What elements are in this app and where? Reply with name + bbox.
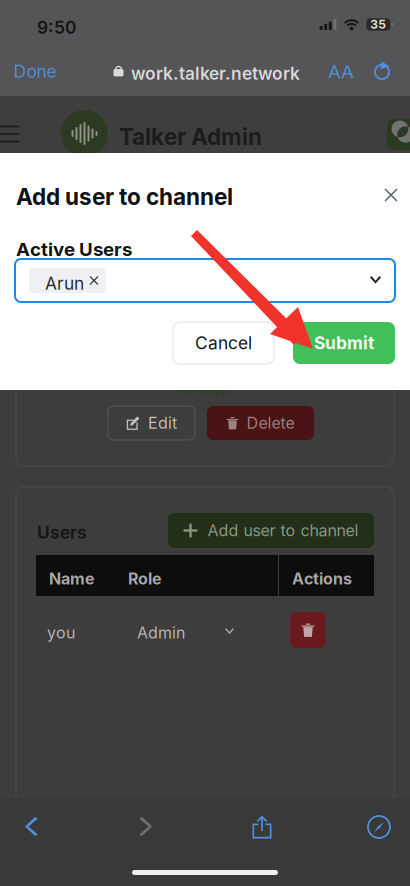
staticText: Role	[128, 569, 162, 588]
staticText: Done	[13, 61, 56, 82]
button[interactable]: Tabs	[350, 805, 408, 849]
button[interactable]: Delete	[207, 406, 314, 440]
button[interactable]: Close	[373, 177, 409, 213]
staticText: work.talker.network	[131, 63, 300, 84]
button[interactable]: Remove Arun	[82, 268, 106, 293]
staticText: Name	[49, 569, 95, 588]
staticText: Talker Admin	[119, 123, 262, 150]
button[interactable]: Back	[2, 805, 60, 849]
staticText: Edit	[148, 413, 177, 433]
staticText: Active Users	[16, 238, 132, 261]
button[interactable]: Reload page	[363, 47, 401, 96]
staticText: AA	[328, 60, 354, 83]
button[interactable]: Text size options	[321, 47, 361, 96]
button[interactable]: Add user to channel	[168, 513, 374, 548]
staticText: Delete	[246, 413, 294, 433]
button[interactable]: Toggle dark mode	[387, 119, 410, 150]
button[interactable]: Cancel	[173, 322, 274, 364]
staticText: Add user to channel	[207, 521, 358, 540]
button[interactable]: Open navigation menu	[0, 119, 22, 149]
staticText: Add user to channel	[16, 183, 233, 210]
staticText: 35	[370, 17, 386, 32]
staticText: Actions	[292, 569, 352, 588]
staticText: Users	[37, 522, 87, 543]
button[interactable]: Delete user	[290, 612, 326, 648]
staticText: Admin	[137, 623, 185, 642]
staticText: Submit	[314, 332, 374, 353]
staticText: Cancel	[195, 332, 252, 353]
button[interactable]: Forward	[119, 805, 177, 849]
button[interactable]: Share	[233, 805, 291, 849]
staticText: Group	[178, 378, 231, 399]
button[interactable]: Done	[0, 47, 72, 96]
staticText: 9:50	[37, 17, 76, 38]
staticText: Arun	[45, 273, 84, 294]
button[interactable]: Submit	[293, 322, 395, 364]
button[interactable]: Edit	[108, 406, 195, 440]
staticText: you	[47, 623, 75, 642]
